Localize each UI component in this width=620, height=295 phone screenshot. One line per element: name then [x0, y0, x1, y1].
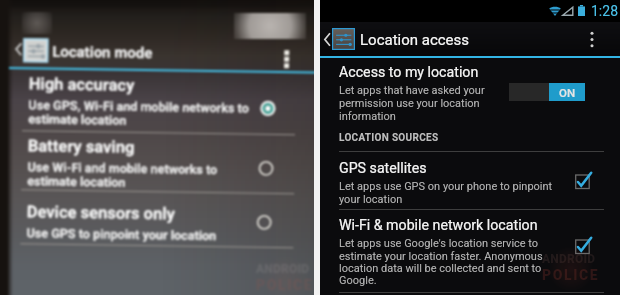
- staticText: Location access: [360, 31, 470, 49]
- button[interactable]: [0, 73, 314, 132]
- button[interactable]: [0, 193, 314, 243]
- button[interactable]: Location mode: [0, 30, 314, 68]
- button[interactable]: [320, 152, 620, 209]
- staticText: ON: [559, 86, 576, 99]
- staticText: LOCATION SOURCES: [339, 132, 439, 144]
- button[interactable]: [320, 210, 620, 292]
- staticText: GPS satellites: [339, 160, 427, 177]
- staticText: Let apps that have asked your permission…: [339, 84, 485, 123]
- staticText: ANDROID: [256, 262, 310, 276]
- staticText: POLICE: [542, 267, 600, 283]
- staticText: Use GPS, Wi-Fi and mobile networks to es…: [28, 97, 249, 131]
- staticText: Wi-Fi & mobile network location: [339, 217, 538, 234]
- staticText: Access to my location: [339, 64, 479, 81]
- staticText: High accuracy: [29, 74, 135, 95]
- button[interactable]: [320, 59, 620, 121]
- staticText: Location mode: [52, 43, 153, 62]
- button[interactable]: Access to my location, on: [509, 83, 585, 101]
- staticText: Use Wi-Fi and mobile networks to estimat…: [27, 159, 218, 192]
- staticText: 1:28: [591, 3, 618, 19]
- button[interactable]: [0, 133, 314, 191]
- other: Enabled: [575, 238, 592, 254]
- other: Enabled: [575, 173, 592, 189]
- staticText: Device sensors only: [27, 202, 176, 224]
- button[interactable]: Location access: [320, 22, 620, 56]
- staticText: ANDROID: [542, 252, 596, 266]
- staticText: Use GPS to pinpoint your location: [26, 225, 217, 243]
- staticText: POLICE: [256, 277, 314, 293]
- staticText: Let apps use GPS on your phone to pinpoi…: [339, 180, 553, 206]
- staticText: Battery saving: [28, 136, 135, 157]
- staticText: Let apps use Google's location service t…: [339, 237, 543, 286]
